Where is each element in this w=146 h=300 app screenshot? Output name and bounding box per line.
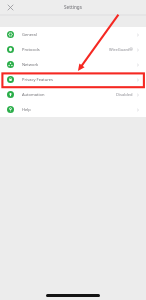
staticText: WireGuard® [109, 47, 133, 53]
button[interactable]: Help [0, 102, 146, 117]
staticText: Help [22, 107, 31, 113]
button[interactable]: Privacy Features [0, 72, 146, 87]
staticText: Automation [22, 92, 45, 98]
staticText: General [22, 32, 37, 38]
button[interactable]: General [0, 27, 146, 42]
button[interactable]: Protocols [0, 42, 146, 57]
button[interactable]: Network [0, 57, 146, 72]
staticText: Protocols [22, 47, 40, 53]
button[interactable]: Close [5, 2, 15, 12]
staticText: Disabled [116, 92, 133, 98]
button[interactable]: Automation [0, 87, 146, 102]
staticText: Settings [64, 4, 82, 10]
staticText: Privacy Features [22, 77, 53, 83]
staticText: Network [22, 62, 39, 68]
